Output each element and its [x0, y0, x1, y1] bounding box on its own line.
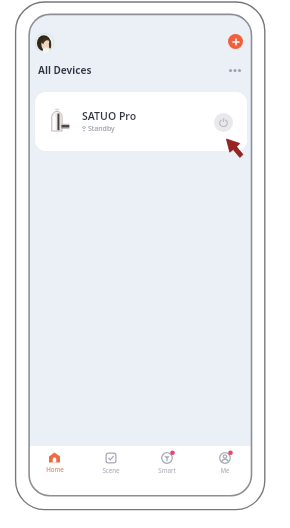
staticText: Smart: [158, 466, 176, 474]
button[interactable]: SATUO Pro: [35, 92, 247, 151]
staticText: Me: [220, 466, 230, 474]
staticText: Scene: [102, 466, 120, 474]
staticText: Home: [46, 465, 64, 473]
staticText: SATUO Pro: [82, 109, 137, 123]
button[interactable]: Scene: [83, 446, 138, 496]
staticText: All Devices: [38, 63, 92, 77]
button[interactable]: All Devices: [38, 63, 92, 77]
button[interactable]: Add device: [228, 34, 243, 49]
button[interactable]: Smart: [139, 446, 194, 496]
button[interactable]: Profile: [34, 32, 55, 53]
button[interactable]: Power: [214, 113, 233, 132]
button[interactable]: Home: [29, 446, 82, 496]
button[interactable]: More options: [223, 58, 247, 82]
button[interactable]: Me: [197, 446, 251, 496]
staticText: Standby: [88, 124, 115, 134]
